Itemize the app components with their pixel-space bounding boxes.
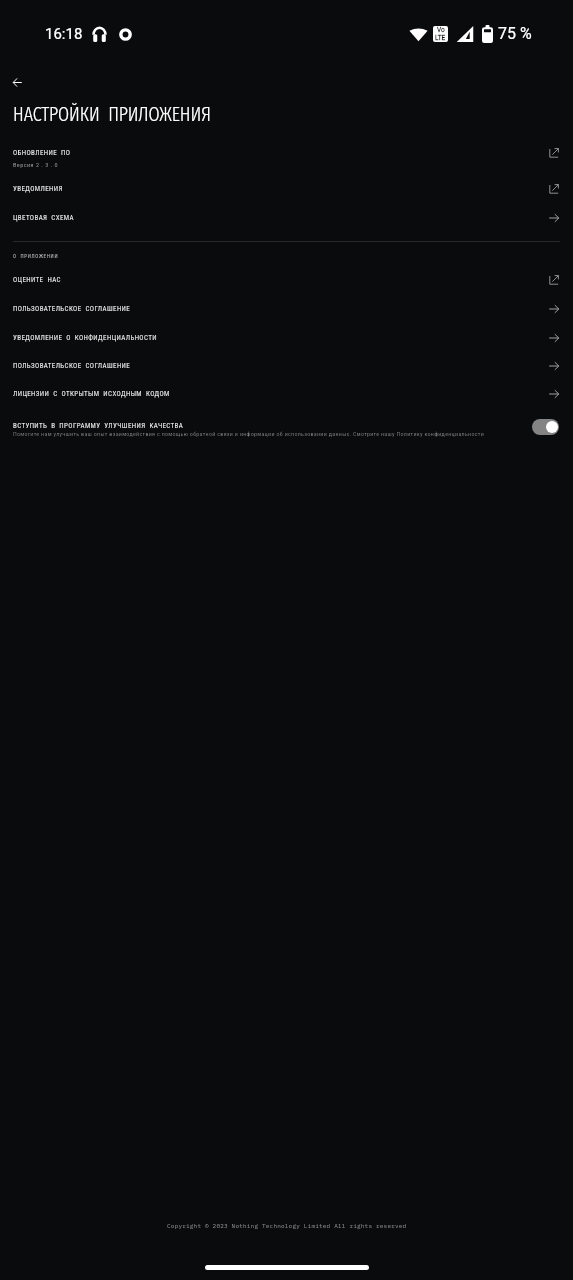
button[interactable]: ВСТУПИТЬ В ПРОГРАММУ УЛУЧШЕНИЯ КАЧЕСТВА <box>0 422 573 442</box>
staticText: НАСТРОЙКИ ПРИЛОЖЕНИЯ <box>13 103 211 126</box>
staticText: Vo <box>437 26 445 34</box>
staticText: ПОЛЬЗОВАТЕЛЬСКОЕ СОГЛАШЕНИЕ <box>13 305 131 313</box>
button[interactable]: ЦВЕТОВАЯ СХЕМА <box>0 212 573 238</box>
staticText: ЛИЦЕНЗИИ С ОТКРЫТЫМ ИСХОДНЫМ КОДОМ <box>13 390 170 398</box>
staticText: ВСТУПИТЬ В ПРОГРАММУ УЛУЧШЕНИЯ КАЧЕСТВА <box>13 422 184 430</box>
button[interactable]: УВЕДОМЛЕНИЕ О КОНФИДЕНЦИАЛЬНОСТИ <box>0 332 573 358</box>
staticText: О ПРИЛОЖЕНИИ <box>13 253 59 259</box>
button[interactable]: ПОЛЬЗОВАТЕЛЬСКОЕ СОГЛАШЕНИЕ <box>0 303 573 329</box>
staticText: ПОЛЬЗОВАТЕЛЬСКОЕ СОГЛАШЕНИЕ <box>13 362 131 370</box>
button[interactable]: Toggle improvement program <box>532 419 559 435</box>
staticText: 16:18 <box>45 25 83 43</box>
staticText: ОЦЕНИТЕ НАС <box>13 276 61 284</box>
button[interactable]: Back <box>5 70 29 94</box>
staticText: Copyright © 2023 Nothing Technology Limi… <box>167 1222 407 1230</box>
staticText: LTE <box>435 34 446 42</box>
button[interactable]: ЛИЦЕНЗИИ С ОТКРЫТЫМ ИСХОДНЫМ КОДОМ <box>0 388 573 414</box>
button[interactable]: ПОЛЬЗОВАТЕЛЬСКОЕ СОГЛАШЕНИЕ <box>0 360 573 386</box>
staticText: ОБНОВЛЕНИЕ ПО <box>13 149 71 157</box>
staticText: Версия 2 . 3 . 0 <box>13 161 59 168</box>
staticText: УВЕДОМЛЕНИЯ <box>13 185 63 193</box>
button[interactable]: УВЕДОМЛЕНИЯ <box>0 183 573 209</box>
staticText: УВЕДОМЛЕНИЕ О КОНФИДЕНЦИАЛЬНОСТИ <box>13 334 157 342</box>
staticText: Помогите нам улучшить ваш опыт взаимодей… <box>13 430 485 437</box>
button[interactable]: ОБНОВЛЕНИЕ ПО <box>0 147 573 175</box>
button[interactable]: ОЦЕНИТЕ НАС <box>0 274 573 300</box>
staticText: 75 % <box>498 24 532 43</box>
staticText: ЦВЕТОВАЯ СХЕМА <box>13 214 74 222</box>
